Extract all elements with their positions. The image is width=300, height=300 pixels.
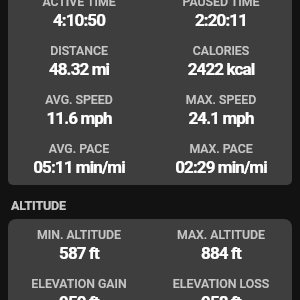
- staticText: ELEVATION GAIN: [8, 277, 150, 291]
- staticText: AVG. PACE: [8, 142, 150, 156]
- staticText: 2422 kcal: [150, 59, 292, 79]
- staticText: AVG. SPEED: [8, 93, 150, 107]
- staticText: 884 ft: [150, 243, 292, 263]
- button[interactable]: MIN. ALTITUDE: [8, 219, 150, 268]
- button[interactable]: ELEVATION LOSS: [150, 268, 292, 300]
- staticText: ELEVATION LOSS: [150, 277, 292, 291]
- button[interactable]: AVG. PACE: [8, 133, 150, 182]
- staticText: 24.1 mph: [150, 108, 292, 128]
- button[interactable]: AVG. SPEED: [8, 84, 150, 133]
- button[interactable]: DISTANCE: [8, 35, 150, 84]
- staticText: CALORIES: [150, 44, 292, 58]
- staticText: 2:20:11: [150, 10, 292, 30]
- button[interactable]: MAX. SPEED: [150, 84, 292, 133]
- button[interactable]: CALORIES: [150, 35, 292, 84]
- button[interactable]: ACTIVE TIME: [8, 0, 150, 35]
- staticText: 11.6 mph: [8, 108, 150, 128]
- staticText: MIN. ALTITUDE: [8, 228, 150, 242]
- staticText: 958 ft: [150, 292, 292, 300]
- staticText: ALTITUDE: [11, 198, 66, 213]
- button[interactable]: MAX. ALTITUDE: [150, 219, 292, 268]
- button[interactable]: PAUSED TIME: [150, 0, 292, 35]
- staticText: ACTIVE TIME: [8, 0, 150, 9]
- staticText: PAUSED TIME: [150, 0, 292, 9]
- staticText: DISTANCE: [8, 44, 150, 58]
- button[interactable]: ELEVATION GAIN: [8, 268, 150, 300]
- staticText: MAX. SPEED: [150, 93, 292, 107]
- staticText: MAX. PACE: [150, 142, 292, 156]
- staticText: 4:10:50: [8, 10, 150, 30]
- staticText: 950 ft: [8, 292, 150, 300]
- staticText: MAX. ALTITUDE: [150, 228, 292, 242]
- staticText: 48.32 mi: [8, 59, 150, 79]
- staticText: 587 ft: [8, 243, 150, 263]
- button[interactable]: MAX. PACE: [150, 133, 292, 182]
- staticText: 02:29 min/mi: [150, 157, 292, 177]
- staticText: 05:11 min/mi: [8, 157, 150, 177]
